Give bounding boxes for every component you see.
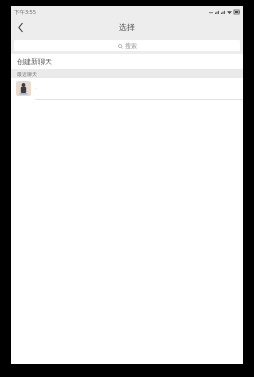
button[interactable]: ·	[11, 78, 243, 99]
button[interactable]: 搜索	[14, 40, 240, 51]
staticText: 搜索	[125, 42, 137, 50]
staticText: 最近聊天	[17, 71, 37, 77]
staticText: 选择	[119, 22, 135, 32]
staticText: 下午3:55	[14, 8, 36, 16]
button[interactable]: 创建新聊天	[11, 54, 243, 69]
staticText: ·	[35, 84, 37, 94]
staticText: 创建新聊天	[17, 57, 52, 66]
button[interactable]: 返回	[11, 17, 31, 37]
